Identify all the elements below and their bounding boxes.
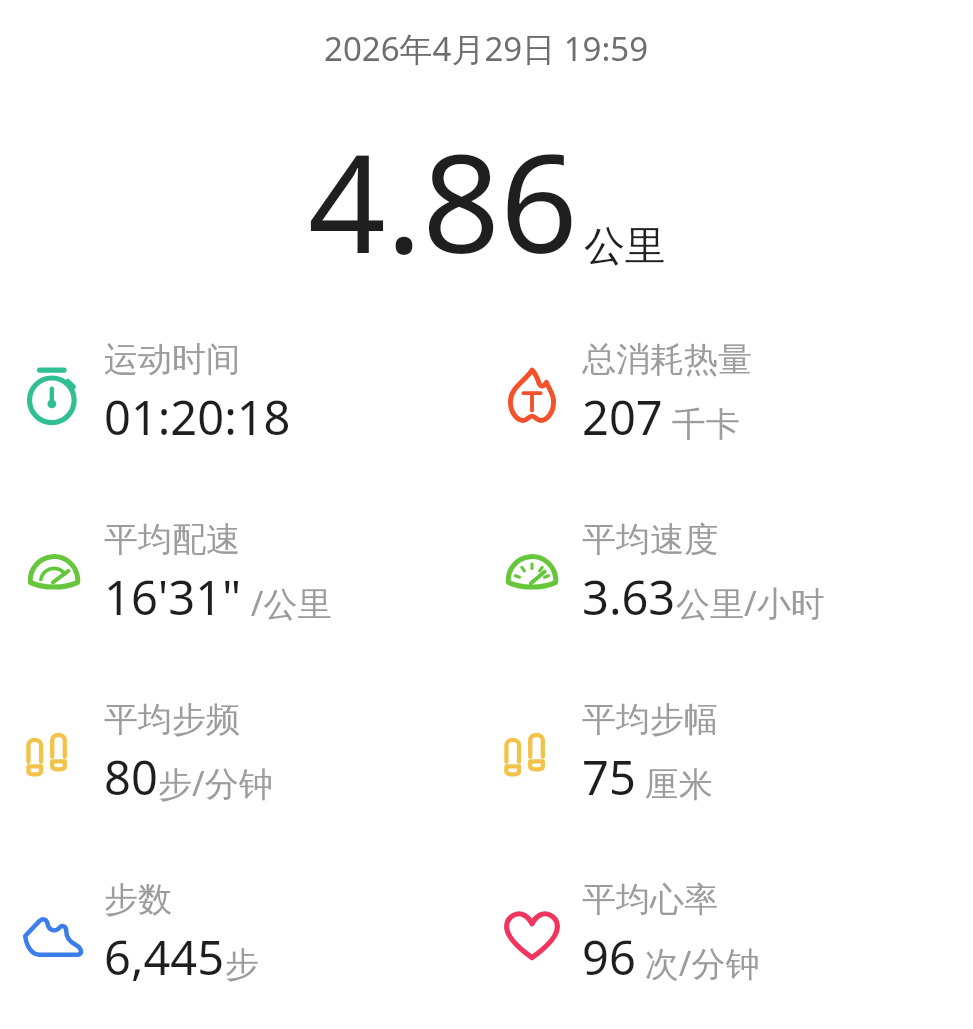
button[interactable]: Exercise time (18, 338, 478, 466)
staticText: 平均心率 (582, 878, 718, 921)
staticText: 80 (104, 745, 158, 809)
button[interactable]: Average stride (496, 698, 956, 826)
button[interactable]: Average cadence (18, 698, 478, 826)
staticText: 平均步频 (104, 698, 240, 741)
staticText: /公里 (242, 580, 332, 626)
staticText: 步数 (104, 878, 172, 921)
staticText: 平均速度 (582, 518, 718, 561)
staticText: 平均步幅 (582, 698, 718, 741)
staticText: 4.86 (308, 108, 578, 293)
staticText: 次/分钟 (636, 940, 760, 986)
staticText: 75 (582, 745, 636, 809)
staticText: 步/分钟 (158, 760, 273, 806)
button[interactable]: Average speed (496, 518, 956, 646)
staticText: 207 (582, 385, 663, 449)
staticText: 平均配速 (104, 518, 240, 561)
staticText: 公里/小时 (676, 580, 825, 626)
staticText: 千卡 (663, 400, 740, 446)
staticText: 2026年4月29日 19:59 (324, 26, 649, 71)
staticText: 6,445 (104, 925, 225, 989)
staticText: 运动时间 (104, 338, 240, 381)
staticText: 厘米 (636, 760, 713, 806)
staticText: 步 (225, 943, 259, 986)
button[interactable]: Average heart rate (496, 878, 956, 1006)
staticText: 96 (582, 925, 636, 989)
button[interactable]: Steps (18, 878, 478, 1006)
staticText: 01:20:18 (104, 385, 291, 449)
button[interactable]: Average pace (18, 518, 478, 646)
staticText: 3.63 (582, 565, 676, 629)
staticText: 公里 (584, 221, 666, 273)
button[interactable]: Calories (496, 338, 956, 466)
staticText: 16'31" (104, 565, 242, 629)
staticText: 总消耗热量 (582, 338, 752, 381)
